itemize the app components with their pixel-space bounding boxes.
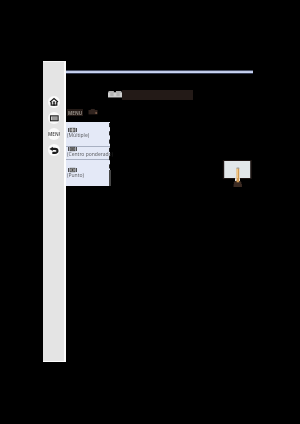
button[interactable]: (Punto) xyxy=(66,161,110,186)
button[interactable]: Display xyxy=(48,112,60,124)
button[interactable]: MENU xyxy=(67,109,83,116)
staticText: (Múltiple) xyxy=(67,132,90,139)
button[interactable]: Menu xyxy=(48,128,60,140)
button[interactable]: (Múltiple) xyxy=(66,122,110,146)
staticText: MENU xyxy=(68,110,83,116)
button[interactable]: Back xyxy=(48,144,60,156)
staticText: (Punto) xyxy=(67,172,85,179)
button[interactable]: (Centro ponderado) xyxy=(66,146,110,160)
button[interactable]: Home xyxy=(48,96,60,108)
staticText: (Centro ponderado) xyxy=(67,151,114,158)
staticText: MENU xyxy=(48,131,60,137)
